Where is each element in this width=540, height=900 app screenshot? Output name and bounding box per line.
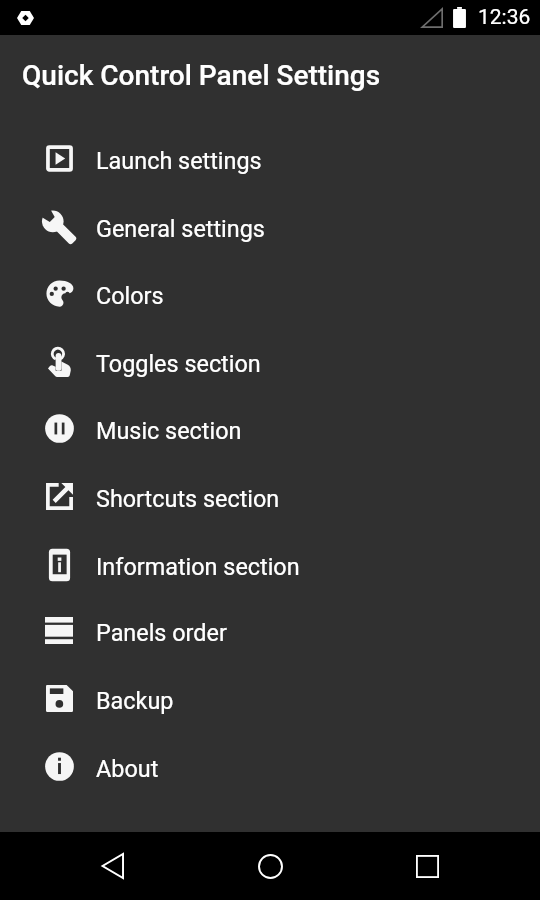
staticText: General settings — [96, 215, 265, 242]
button[interactable]: About — [0, 733, 540, 800]
staticText: Quick Control Panel Settings — [22, 59, 381, 92]
button[interactable]: Colors — [0, 260, 540, 327]
staticText: Toggles section — [96, 350, 261, 377]
staticText: 12:36 — [478, 5, 531, 30]
other: App notification — [17, 10, 34, 26]
button[interactable]: Panels order — [0, 597, 540, 664]
staticText: Colors — [96, 282, 164, 309]
staticText: About — [96, 755, 159, 782]
staticText: Information section — [96, 553, 300, 580]
button[interactable]: Music section — [0, 395, 540, 462]
staticText: Shortcuts section — [96, 485, 280, 512]
staticText: Music section — [96, 417, 242, 444]
button[interactable]: Backup — [0, 665, 540, 732]
button[interactable]: Back — [67, 832, 157, 900]
button[interactable]: Shortcuts section — [0, 463, 540, 530]
staticText: Panels order — [96, 619, 227, 646]
button[interactable]: Recent apps — [382, 832, 472, 900]
button[interactable]: Launch settings — [0, 125, 540, 192]
button[interactable]: General settings — [0, 193, 540, 260]
button[interactable]: Toggles section — [0, 328, 540, 395]
staticText: Backup — [96, 687, 174, 714]
button[interactable]: Home — [225, 832, 315, 900]
button[interactable]: Information section — [0, 531, 540, 598]
staticText: Launch settings — [96, 147, 262, 174]
